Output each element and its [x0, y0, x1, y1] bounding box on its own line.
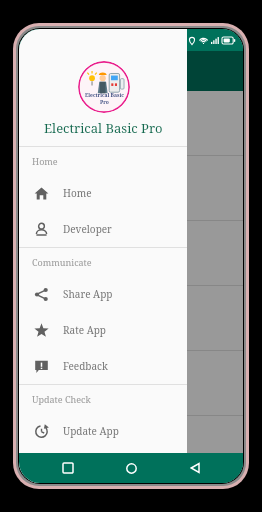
staticText: Communicate [32, 256, 92, 268]
staticText: Feedback [63, 359, 108, 373]
staticText: Pro [100, 99, 109, 106]
button[interactable]: Home [116, 453, 146, 483]
button[interactable]: Back [180, 453, 210, 483]
button[interactable]: it Breaker [19, 286, 243, 350]
staticText: Update App [63, 424, 119, 438]
staticText: Home [63, 186, 92, 200]
button[interactable]: Home [116, 453, 146, 483]
button[interactable]: Formulas [19, 91, 243, 155]
staticText: Home [32, 155, 58, 167]
button[interactable]: Rate App [19, 312, 187, 348]
button[interactable]: rical Sym... [19, 416, 243, 453]
staticText: Developer [63, 222, 112, 236]
button[interactable]: Recent apps [53, 453, 83, 483]
button[interactable]: se Wiring [19, 221, 243, 285]
staticText: Formulas [108, 134, 154, 148]
button[interactable]: Electrical Basic [19, 29, 187, 146]
button[interactable]: Feedback [19, 348, 187, 384]
button[interactable]: Share App [19, 276, 187, 312]
staticText: Electrical Basic [85, 92, 124, 99]
button[interactable]: nsformer [19, 351, 243, 415]
button[interactable]: Form to... [19, 156, 243, 220]
button[interactable]: Back [180, 453, 210, 483]
button[interactable]: Recent apps [53, 453, 83, 483]
button[interactable]: Home [19, 175, 187, 211]
staticText: Update Check [32, 393, 91, 405]
staticText: More Apps [63, 459, 115, 473]
staticText: Electrical Basic Pro [44, 119, 163, 137]
button[interactable]: Developer [19, 211, 187, 247]
staticText: Rate App [63, 323, 106, 337]
button[interactable]: More Apps [19, 449, 187, 483]
button[interactable]: Update App [19, 413, 187, 449]
staticText: Share App [63, 287, 113, 301]
button[interactable] [19, 51, 243, 453]
